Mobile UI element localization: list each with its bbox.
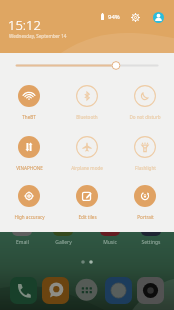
button[interactable]: Bluetooth xyxy=(58,85,116,120)
staticText: Edit tiles xyxy=(78,214,97,220)
button[interactable]: Gallery xyxy=(53,216,73,236)
staticText: Portrait xyxy=(137,214,154,220)
button[interactable]: Camera xyxy=(137,277,164,304)
button[interactable]: Portrait xyxy=(116,185,174,220)
button[interactable]: User profile xyxy=(153,12,164,23)
staticText: VINAPHONE xyxy=(16,165,43,171)
button[interactable]: Messages xyxy=(42,277,69,304)
button[interactable]: VINAPHONE xyxy=(0,136,58,171)
staticText: Settings xyxy=(141,239,161,246)
button[interactable]: Apps xyxy=(73,277,100,304)
staticText: Music xyxy=(103,239,117,246)
staticText: High accuracy xyxy=(14,214,45,220)
button[interactable]: Email xyxy=(12,216,32,236)
staticText: Gallery xyxy=(55,239,72,246)
staticText: Bluetooth xyxy=(76,114,98,120)
staticText: TheBT xyxy=(22,114,36,120)
button[interactable]: Browser xyxy=(105,277,132,304)
button[interactable]: Music xyxy=(100,216,120,236)
staticText: Email xyxy=(16,239,29,246)
staticText: 94% xyxy=(108,13,120,21)
staticText: Wednesday, September 14 xyxy=(9,33,67,39)
button[interactable]: Airplane mode xyxy=(58,136,116,171)
button[interactable]: Settings xyxy=(131,13,140,22)
button[interactable]: Edit tiles xyxy=(58,185,116,220)
staticText: 15:12 xyxy=(8,16,41,34)
button[interactable]: Do not disturb xyxy=(116,85,174,120)
button[interactable]: High accuracy xyxy=(0,185,58,220)
staticText: Do not disturb xyxy=(129,114,161,120)
button[interactable]: Phone xyxy=(10,277,37,304)
button[interactable]: Flashlight xyxy=(116,136,174,171)
button[interactable]: Brightness xyxy=(0,53,174,78)
staticText: Airplane mode xyxy=(71,165,103,171)
staticText: Flashlight xyxy=(135,165,156,171)
button[interactable]: Settings xyxy=(141,216,161,236)
button[interactable]: TheBT xyxy=(0,85,58,120)
